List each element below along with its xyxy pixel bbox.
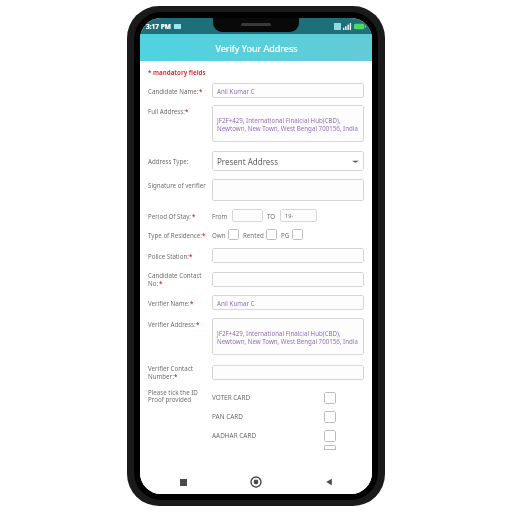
staticText: * mandatory fields — [148, 68, 206, 76]
staticText: VOTER CARD — [212, 393, 251, 402]
button[interactable]: Home — [247, 473, 265, 491]
staticText: Police Station: — [148, 252, 189, 260]
button[interactable]: Anil Kumar C — [212, 83, 364, 98]
staticText: No: — [148, 279, 159, 287]
staticText: From — [212, 212, 228, 220]
staticText: Type of Residence: — [148, 231, 202, 239]
other: Open dropdown — [352, 158, 359, 165]
staticText: Candidate Contact — [148, 271, 202, 279]
staticText: Rented — [243, 231, 264, 239]
staticText: Address Type: — [148, 157, 189, 165]
button[interactable] — [212, 365, 364, 380]
staticText: * — [174, 372, 178, 380]
staticText: Verify Your Address — [215, 42, 298, 54]
staticText: AADHAR CARD — [212, 431, 257, 440]
staticText: Please tick the ID Proof provided — [148, 388, 198, 404]
staticText: JF2F+429, International Finalcial Hub(CB… — [217, 329, 359, 345]
staticText: * — [202, 231, 206, 239]
staticText: PG — [281, 231, 290, 239]
button[interactable]: Present Address — [212, 151, 364, 171]
staticText: Candidate Name: — [148, 87, 199, 95]
button[interactable]: Checkbox — [324, 392, 336, 404]
staticText: * — [199, 87, 203, 95]
staticText: Verifier Contact — [148, 364, 193, 372]
staticText: Present Address — [217, 156, 279, 167]
staticText: * — [190, 299, 194, 307]
staticText: Period Of Stay: — [148, 212, 192, 220]
staticText: Number: — [148, 372, 174, 380]
button[interactable]: VOTER CARD — [212, 388, 364, 407]
button[interactable]: Checkbox — [292, 229, 303, 240]
staticText: Verifier Name: — [148, 299, 190, 307]
button[interactable]: JF2F+429, International Finalcial Hub(CB… — [212, 105, 364, 142]
staticText: TO — [267, 212, 276, 220]
button[interactable]: AADHAR CARD — [212, 426, 364, 445]
staticText: Verifier Address: — [148, 320, 196, 328]
button[interactable] — [232, 209, 263, 222]
staticText: * — [159, 279, 163, 287]
button[interactable]: PAN CARD — [212, 407, 364, 426]
button[interactable]: Checkbox — [324, 430, 336, 442]
button[interactable]: Back — [320, 473, 338, 491]
button[interactable] — [212, 248, 364, 263]
button[interactable]: 19-Nov-2021 — [280, 209, 317, 222]
staticText: * — [196, 320, 200, 328]
staticText: Signature of verifier — [148, 181, 206, 189]
staticText: Anil Kumar C — [217, 299, 255, 307]
button[interactable]: JF2F+429, International Finalcial Hub(CB… — [212, 318, 364, 355]
button[interactable]: Anil Kumar C — [212, 295, 364, 310]
staticText: Full Address: — [148, 107, 185, 115]
button[interactable]: Checkbox — [324, 411, 336, 423]
staticText: 3:17 PM — [146, 22, 171, 31]
staticText: Own — [212, 231, 226, 239]
staticText: * — [192, 212, 196, 220]
button[interactable]: Recent apps — [174, 473, 192, 491]
button[interactable] — [212, 179, 364, 201]
staticText: 19-Nov-2021 — [285, 212, 312, 219]
staticText: * — [189, 252, 193, 260]
button[interactable] — [212, 272, 364, 287]
staticText: Anil Kumar C — [217, 87, 255, 95]
staticText: PAN CARD — [212, 412, 243, 421]
staticText: JF2F+429, International Finalcial Hub(CB… — [217, 116, 359, 132]
staticText: * — [185, 107, 189, 115]
button[interactable]: Checkbox — [266, 229, 277, 240]
button[interactable]: Checkbox — [228, 229, 239, 240]
